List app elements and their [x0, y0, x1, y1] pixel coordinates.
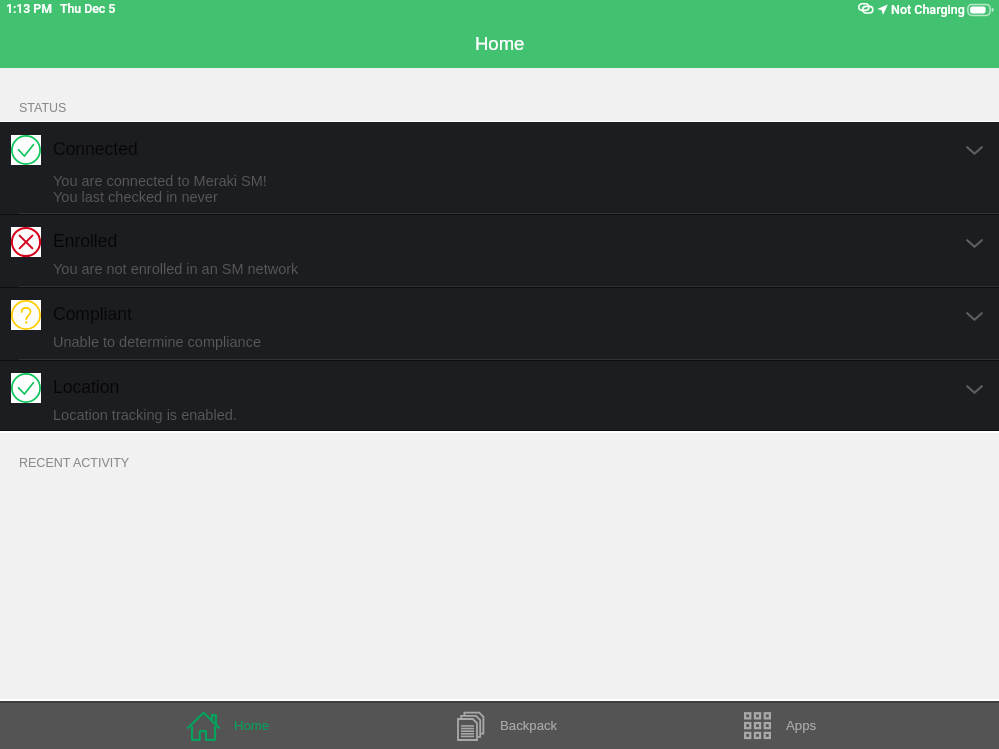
other: Expand Enrolled — [966, 239, 983, 248]
button[interactable]: Home — [187, 701, 270, 749]
staticText: Compliant — [53, 304, 132, 324]
staticText: Thu Dec 5 — [60, 2, 116, 16]
other: Location — [877, 4, 888, 15]
other: Expand Connected — [966, 146, 983, 155]
staticText: Home — [475, 33, 525, 54]
staticText: 1:13 PM — [6, 2, 52, 16]
other: VPN — [858, 3, 874, 14]
staticText: Enrolled — [53, 231, 118, 251]
staticText: Unable to determine compliance — [53, 334, 261, 350]
button[interactable]: Connected — [0, 122, 999, 213]
staticText: You are not enrolled in an SM network — [53, 261, 299, 277]
staticText: Connected — [53, 139, 138, 159]
staticText: Not Charging — [891, 2, 965, 17]
button[interactable]: Backpack — [457, 701, 558, 749]
other: Expand Location — [966, 385, 983, 394]
button[interactable]: Enrolled — [0, 215, 999, 286]
button[interactable]: Compliant — [0, 288, 999, 359]
staticText: RECENT ACTIVITY — [19, 456, 130, 470]
other: Expand Compliant — [966, 312, 983, 321]
staticText: Home — [234, 718, 270, 733]
button[interactable]: Apps — [744, 701, 817, 749]
staticText: Backpack — [500, 718, 558, 733]
staticText: You last checked in never — [53, 189, 218, 205]
staticText: Location — [53, 377, 120, 397]
button[interactable]: Location — [0, 361, 999, 430]
staticText: Apps — [786, 718, 817, 733]
staticText: You are connected to Meraki SM! — [53, 173, 267, 189]
staticText: STATUS — [19, 101, 67, 115]
other: Battery — [967, 3, 996, 16]
staticText: Location tracking is enabled. — [53, 407, 237, 423]
